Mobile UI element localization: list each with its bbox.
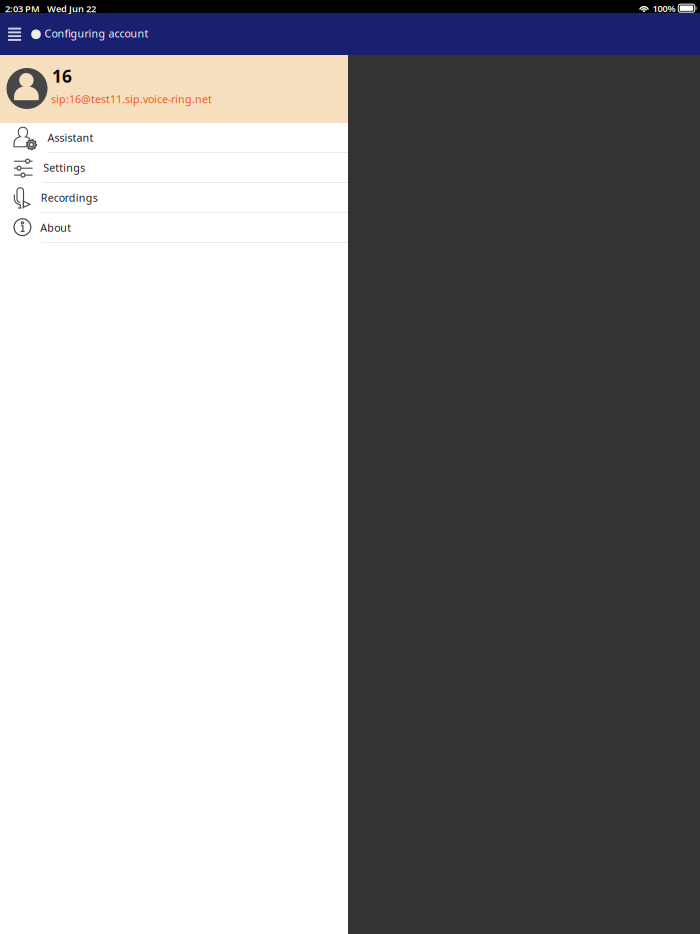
staticText: Settings xyxy=(43,160,85,175)
staticText: 2:03 PM xyxy=(5,2,40,15)
button[interactable]: Assistant xyxy=(0,123,348,153)
button[interactable]: About xyxy=(0,213,348,243)
staticText: 16 xyxy=(52,64,72,87)
staticText: Recordings xyxy=(41,190,98,205)
staticText: 100% xyxy=(652,2,675,15)
staticText: About xyxy=(40,220,71,235)
staticText: sip:16@test11.sip.voice-ring.net xyxy=(51,92,212,106)
button[interactable]: Recordings xyxy=(0,183,348,213)
staticText: Assistant xyxy=(48,130,94,145)
staticText: Wed Jun 22 xyxy=(47,2,96,15)
button[interactable]: Settings xyxy=(0,153,348,183)
button[interactable]: Configuring account xyxy=(0,14,700,55)
button[interactable]: Menu xyxy=(0,14,26,55)
staticText: Configuring account xyxy=(44,26,148,41)
